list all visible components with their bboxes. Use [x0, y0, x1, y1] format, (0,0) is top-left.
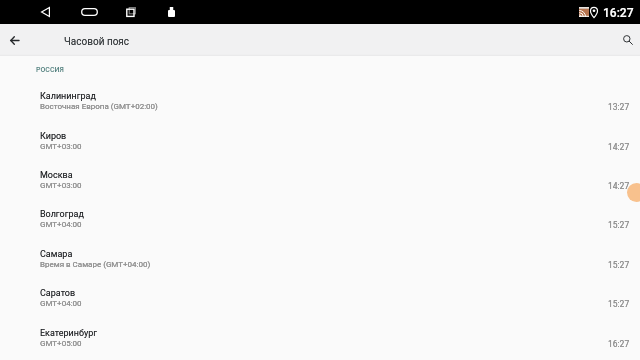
- staticText: 15:27: [608, 220, 630, 230]
- staticText: GMT+04:00: [40, 220, 82, 229]
- button[interactable]: Home: [77, 0, 101, 24]
- staticText: Часовой пояс: [64, 36, 130, 48]
- staticText: GMT+03:00: [40, 142, 82, 151]
- staticText: Время в Самаре (GMT+04:00): [40, 260, 151, 269]
- staticText: 14:27: [608, 142, 630, 152]
- button[interactable]: Екатеринбург: [0, 330, 640, 360]
- button[interactable]: Россия section: [36, 63, 64, 76]
- button[interactable]: Search: [616, 24, 640, 56]
- staticText: 14:27: [608, 181, 630, 191]
- staticText: 13:27: [608, 102, 630, 112]
- staticText: GMT+04:00: [40, 299, 82, 308]
- staticText: 14:27: [608, 142, 630, 152]
- staticText: Киров: [40, 131, 67, 142]
- staticText: 13:27: [608, 102, 630, 112]
- staticText: Волгоград: [40, 209, 84, 220]
- staticText: 15:27: [608, 299, 630, 309]
- button[interactable]: Navigate up: [0, 24, 29, 56]
- button[interactable]: Recent apps: [119, 0, 143, 24]
- staticText: GMT+03:00: [40, 181, 82, 190]
- button[interactable]: Fast scroll: [627, 183, 640, 202]
- staticText: GMT+05:00: [40, 339, 82, 348]
- staticText: Калининград: [40, 91, 96, 102]
- staticText: Волгоград: [40, 209, 84, 220]
- button[interactable]: Самара: [0, 251, 640, 290]
- staticText: GMT+03:00: [40, 181, 82, 190]
- staticText: РОССИЯ: [36, 66, 64, 74]
- staticText: 16:27: [603, 6, 634, 20]
- staticText: Саратов: [40, 288, 76, 299]
- staticText: 15:27: [608, 299, 630, 309]
- staticText: 16:27: [608, 339, 630, 349]
- button[interactable]: Калининград: [0, 93, 640, 132]
- staticText: Саратов: [40, 288, 76, 299]
- staticText: Киров: [40, 131, 67, 142]
- staticText: 15:27: [608, 260, 630, 270]
- staticText: Самара: [40, 249, 73, 260]
- staticText: GMT+05:00: [40, 339, 82, 348]
- staticText: GMT+04:00: [40, 220, 82, 229]
- staticText: Екатеринбург: [40, 328, 98, 339]
- staticText: Самара: [40, 249, 73, 260]
- staticText: Время в Самаре (GMT+04:00): [40, 260, 151, 269]
- staticText: Москва: [40, 170, 73, 181]
- staticText: Часовой пояс: [64, 36, 130, 48]
- button[interactable]: Москва: [0, 172, 640, 211]
- staticText: Восточная Европа (GMT+02:00): [40, 102, 158, 111]
- staticText: 14:27: [608, 181, 630, 191]
- button[interactable]: Screenshot: [159, 0, 183, 24]
- staticText: Калининград: [40, 91, 96, 102]
- button[interactable]: Киров: [0, 133, 640, 172]
- staticText: 15:27: [608, 260, 630, 270]
- staticText: Екатеринбург: [40, 328, 98, 339]
- staticText: 16:27: [608, 339, 630, 349]
- button[interactable]: Волгоград: [0, 211, 640, 250]
- button[interactable]: Back: [33, 0, 57, 24]
- staticText: Москва: [40, 170, 73, 181]
- staticText: Восточная Европа (GMT+02:00): [40, 102, 158, 111]
- staticText: GMT+03:00: [40, 142, 82, 151]
- staticText: GMT+04:00: [40, 299, 82, 308]
- staticText: 15:27: [608, 220, 630, 230]
- button[interactable]: Саратов: [0, 290, 640, 329]
